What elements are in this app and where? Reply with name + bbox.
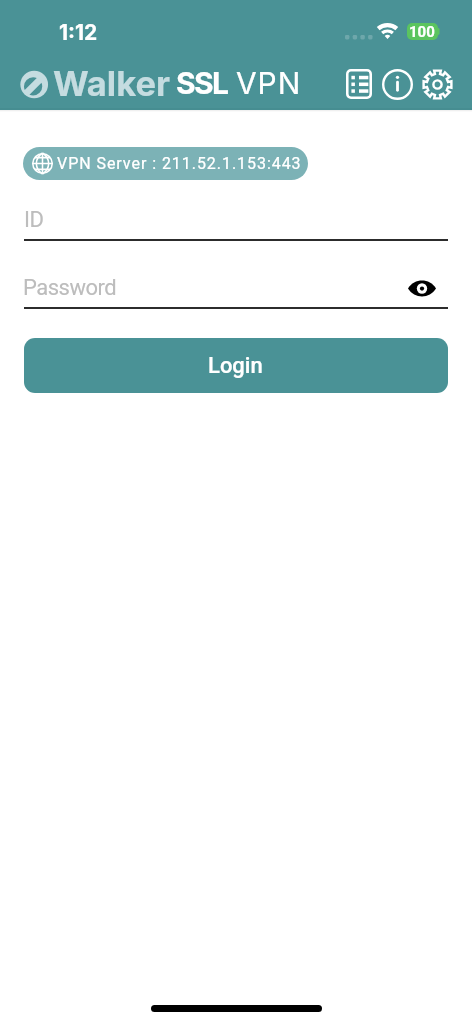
staticText: VPN xyxy=(236,65,302,101)
button[interactable]: Settings xyxy=(419,66,456,103)
staticText: Walker xyxy=(53,63,171,105)
staticText: 1:12 xyxy=(59,20,98,45)
staticText: SSL xyxy=(176,65,228,101)
button[interactable]: VPN Server : 211.52.1.153:443 xyxy=(23,147,308,180)
button[interactable]: Information xyxy=(379,66,416,103)
staticText: Login xyxy=(208,353,263,379)
button[interactable]: Connection log xyxy=(340,65,377,102)
button[interactable]: Password xyxy=(24,271,448,309)
button[interactable]: Login xyxy=(24,338,448,393)
button[interactable]: ID xyxy=(24,203,448,241)
button[interactable]: Show password xyxy=(402,273,442,303)
staticText: 100 xyxy=(409,23,435,40)
staticText: Password xyxy=(23,275,117,301)
staticText: VPN Server : 211.52.1.153:443 xyxy=(57,154,302,173)
staticText: ID xyxy=(24,207,44,233)
